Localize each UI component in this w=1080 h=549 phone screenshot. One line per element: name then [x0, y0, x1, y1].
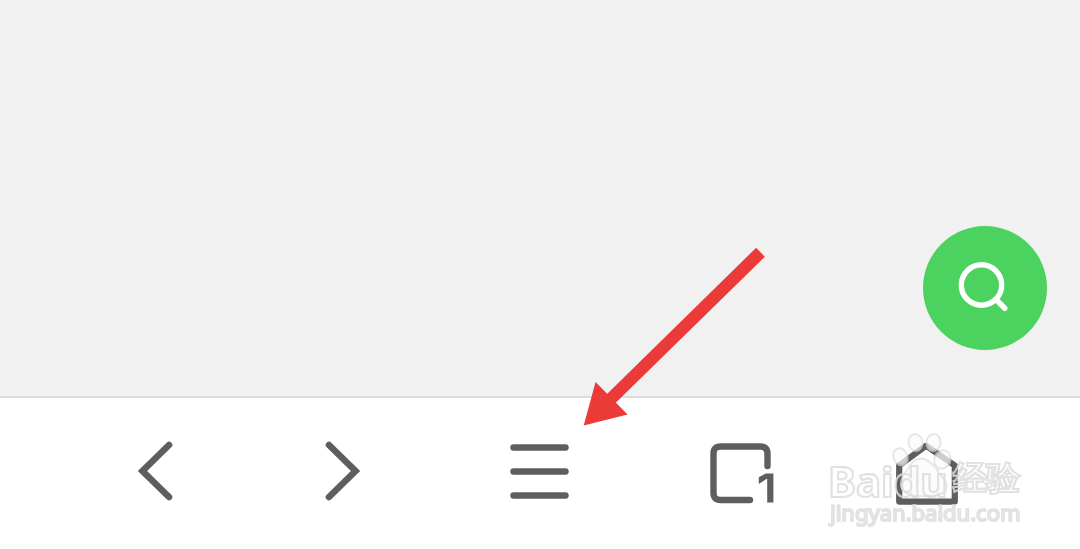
- button[interactable]: Forward: [281, 412, 401, 532]
- button[interactable]: Back: [95, 412, 215, 532]
- button[interactable]: Search: [923, 226, 1047, 350]
- staticText: Baidu: [828, 452, 948, 509]
- button[interactable]: Home: [867, 412, 987, 532]
- button[interactable]: Menu: [479, 412, 599, 532]
- staticText: jingyan.baidu.com: [830, 497, 1021, 527]
- button[interactable]: Tabs, 1 open: [681, 412, 801, 532]
- staticText: 经验: [953, 458, 1019, 500]
